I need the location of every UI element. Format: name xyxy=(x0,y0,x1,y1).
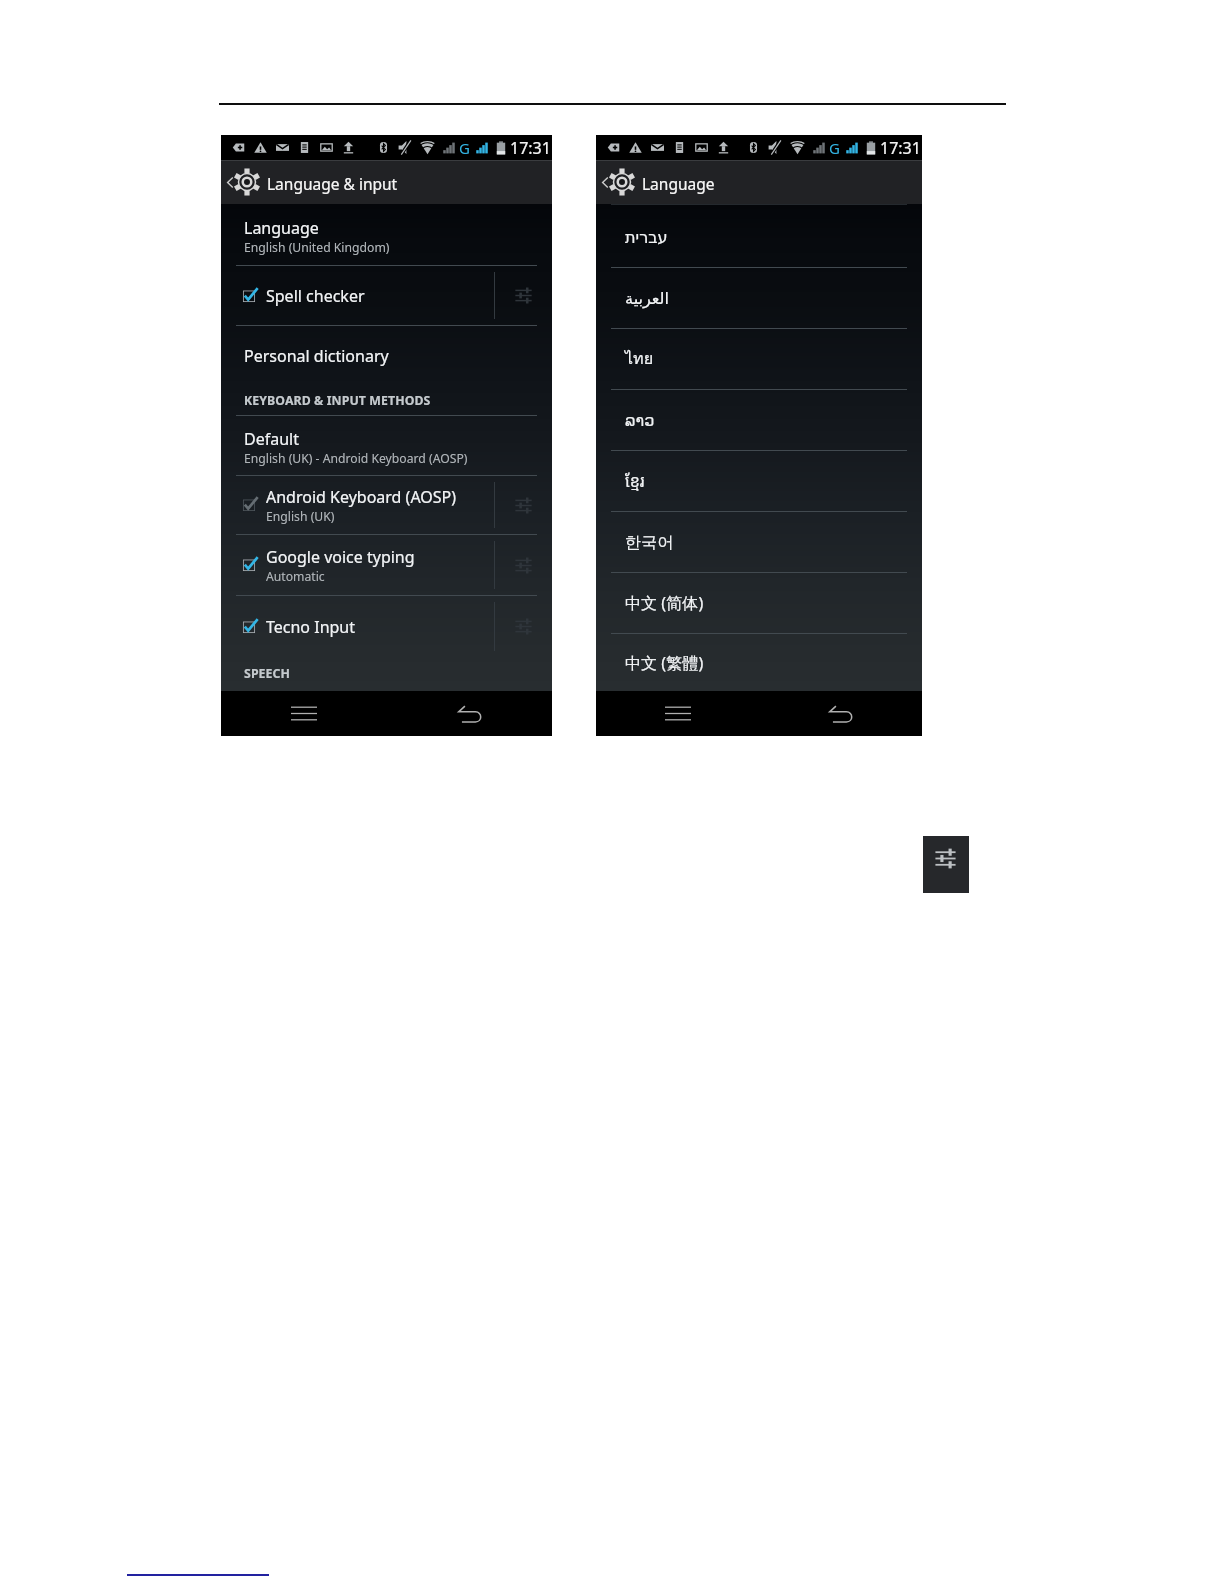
staticText: KEYBOARD & INPUT METHODS xyxy=(244,392,431,409)
staticText: English (UK) - Android Keyboard (AOSP) xyxy=(244,450,468,467)
button[interactable]: Settings xyxy=(495,476,552,534)
button[interactable]: ខ្មែរ xyxy=(596,451,922,511)
button[interactable]: Tecno Input xyxy=(221,596,494,657)
button[interactable]: עברית xyxy=(596,207,922,267)
staticText: Tecno Input xyxy=(266,616,356,638)
button[interactable]: Menu xyxy=(596,691,759,736)
button[interactable]: ລາວ xyxy=(596,390,922,450)
button[interactable]: Input method settings xyxy=(923,836,969,893)
staticText: Personal dictionary xyxy=(244,345,389,367)
staticText: Spell checker xyxy=(266,285,365,307)
staticText: 中文 (繁體) xyxy=(625,652,704,674)
button[interactable]: 한국어 xyxy=(596,512,922,572)
staticText: G xyxy=(829,138,840,158)
staticText: 17:31 xyxy=(880,137,921,159)
button[interactable]: Back xyxy=(386,691,552,736)
button[interactable]: 中文 (简体) xyxy=(596,573,922,633)
staticText: Language & input xyxy=(267,173,398,194)
button[interactable]: Language xyxy=(221,204,552,265)
button[interactable]: Google voice typing xyxy=(221,535,494,595)
button[interactable]: Language & input xyxy=(221,160,552,204)
button[interactable]: Default xyxy=(221,416,552,475)
button[interactable]: Settings xyxy=(495,266,552,325)
button[interactable]: Menu xyxy=(221,691,386,736)
button[interactable]: ไทย xyxy=(596,329,922,389)
staticText: Automatic xyxy=(266,568,325,585)
staticText: Android Keyboard (AOSP) xyxy=(266,486,457,508)
staticText: Language xyxy=(642,173,715,194)
staticText: SPEECH xyxy=(244,665,291,682)
button[interactable]: Settings xyxy=(495,535,552,595)
staticText: English (UK) xyxy=(266,508,335,525)
staticText: עברית xyxy=(625,228,668,247)
staticText: 17:31 xyxy=(510,137,551,159)
staticText: G xyxy=(459,138,470,158)
button[interactable]: Back xyxy=(759,691,922,736)
staticText: English (United Kingdom) xyxy=(244,239,390,256)
staticText: ລາວ xyxy=(625,411,655,430)
button[interactable]: Personal dictionary xyxy=(221,326,552,386)
button[interactable]: Android Keyboard (AOSP) xyxy=(221,476,494,534)
button[interactable]: Spell checker xyxy=(221,266,494,325)
staticText: Google voice typing xyxy=(266,546,415,568)
staticText: ไทย xyxy=(625,346,654,372)
button[interactable]: 中文 (繁體) xyxy=(596,634,922,691)
staticText: 中文 (简体) xyxy=(625,592,704,614)
button[interactable]: Language xyxy=(596,160,922,204)
staticText: 한국어 xyxy=(625,532,674,552)
button[interactable]: العربية xyxy=(596,268,922,328)
staticText: Language xyxy=(244,217,319,239)
staticText: Default xyxy=(244,428,299,450)
staticText: ខ្មែរ xyxy=(625,470,645,492)
staticText: العربية xyxy=(625,289,669,308)
